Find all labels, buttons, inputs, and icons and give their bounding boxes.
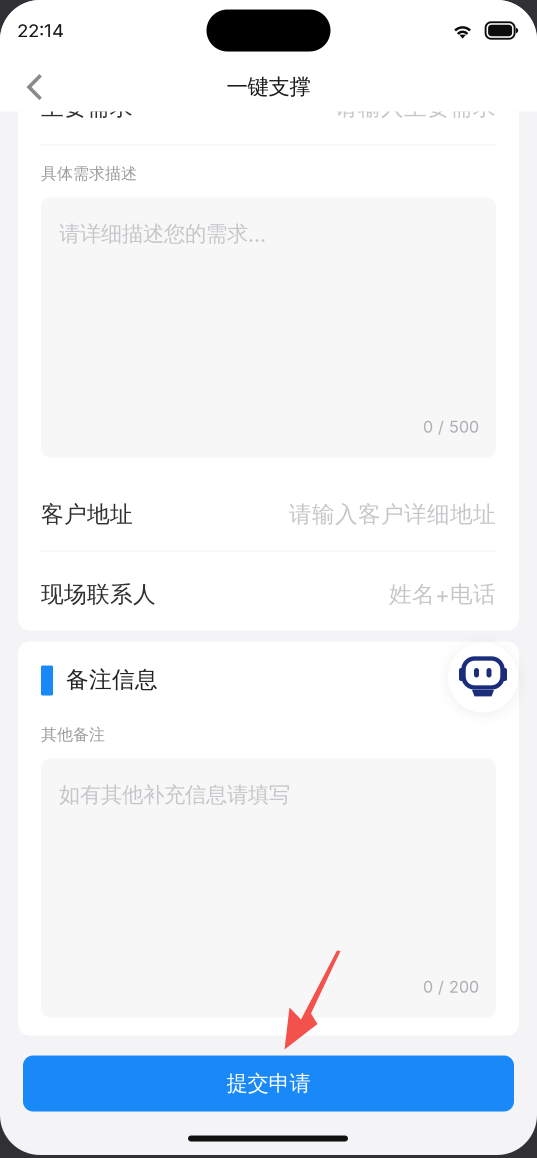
button[interactable]: 提交申请 [23,1055,514,1111]
staticText: 姓名+电话 [389,580,496,609]
button[interactable]: Back [11,62,59,111]
staticText: 一键支撑 [226,74,310,100]
staticText: 主要需求 [41,93,133,122]
staticText: 如有其他补充信息请填写 [59,781,290,808]
staticText: 请详细描述您的需求... [59,220,266,247]
staticText: 22:14 [17,19,64,42]
staticText: 其他备注 [41,724,105,745]
staticText: 现场联系人 [41,580,156,609]
button[interactable]: 客服机器人 [448,642,518,712]
staticText: 请输入客户详细地址 [289,500,496,529]
staticText: 备注信息 [66,665,158,694]
staticText: 具体需求描述 [41,163,137,184]
button[interactable]: 现场联系人 [41,555,496,633]
staticText: 0 / 200 [423,977,479,996]
staticText: 提交申请 [226,1070,310,1097]
staticText: 客户地址 [41,500,133,529]
staticText: 0 / 500 [423,417,479,436]
staticText: 请输入主要需求 [335,93,496,122]
button[interactable]: 客户地址 [41,475,496,553]
